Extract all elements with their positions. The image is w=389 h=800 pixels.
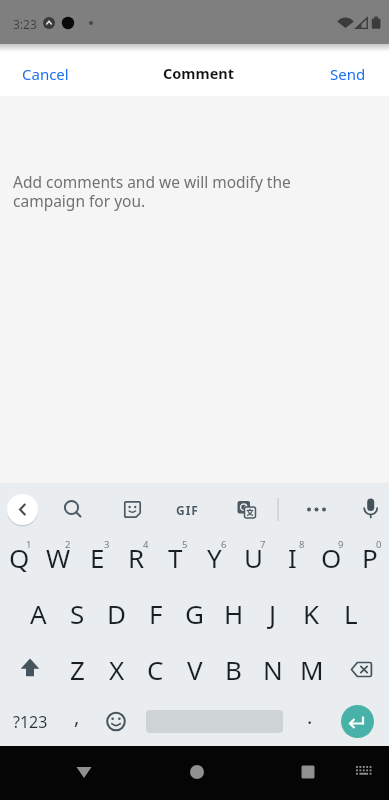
staticText: Q xyxy=(9,540,30,575)
button[interactable]: P xyxy=(351,533,389,586)
staticText: J xyxy=(269,596,277,631)
button[interactable] xyxy=(7,494,38,525)
staticText: GIF xyxy=(176,502,199,518)
button[interactable]: J xyxy=(253,586,292,641)
staticText: P xyxy=(362,540,378,575)
button[interactable] xyxy=(117,494,148,525)
staticText: 5 xyxy=(182,538,188,551)
staticText: E xyxy=(90,540,105,575)
staticText: W xyxy=(46,540,71,575)
staticText: K xyxy=(303,596,320,631)
button[interactable]: L xyxy=(331,586,370,641)
button[interactable]: Y xyxy=(195,533,234,586)
button[interactable] xyxy=(301,494,332,525)
staticText: S xyxy=(70,596,85,631)
button[interactable]: ?123 xyxy=(4,697,56,746)
button[interactable]: C xyxy=(136,641,175,697)
button[interactable] xyxy=(284,752,332,794)
button[interactable]: B xyxy=(214,641,253,697)
button[interactable]: U xyxy=(234,533,273,586)
staticText: M xyxy=(300,652,324,687)
button[interactable]: Send xyxy=(318,56,389,92)
button[interactable]: H xyxy=(214,586,253,641)
staticText: V xyxy=(187,652,203,687)
staticText: I xyxy=(288,540,297,575)
button[interactable]: S xyxy=(58,586,97,641)
staticText: ?123 xyxy=(13,711,48,733)
button[interactable]: M xyxy=(292,641,331,697)
staticText: 4 xyxy=(143,538,149,551)
staticText: 8 xyxy=(299,538,305,551)
staticText: O xyxy=(321,540,342,575)
staticText: Y xyxy=(207,540,222,575)
staticText: T xyxy=(168,540,183,575)
staticText: 3 xyxy=(104,538,110,551)
button[interactable]: Q xyxy=(0,533,39,586)
button[interactable] xyxy=(100,705,132,737)
button[interactable]: O xyxy=(312,533,351,586)
staticText: B xyxy=(225,652,242,687)
button[interactable]: , xyxy=(62,697,92,746)
staticText: 1 xyxy=(26,538,32,551)
button[interactable] xyxy=(331,641,389,697)
button[interactable]: N xyxy=(253,641,292,697)
button[interactable]: Add comments and we will modify the camp… xyxy=(0,96,389,483)
staticText: 2 xyxy=(65,538,71,551)
staticText: L xyxy=(344,596,358,631)
staticText: F xyxy=(149,596,163,631)
button[interactable]: D xyxy=(97,586,136,641)
button[interactable]: V xyxy=(175,641,214,697)
button[interactable] xyxy=(339,703,376,740)
button[interactable] xyxy=(355,492,386,523)
staticText: 0 xyxy=(376,538,382,551)
staticText: Add comments and we will modify the camp… xyxy=(13,171,291,212)
button[interactable]: G xyxy=(175,586,214,641)
staticText: Send xyxy=(330,64,366,84)
staticText: C xyxy=(147,652,164,687)
button[interactable]: . xyxy=(295,697,325,746)
staticText: X xyxy=(109,652,125,687)
staticText: U xyxy=(244,540,264,575)
staticText: G xyxy=(185,596,204,631)
staticText: N xyxy=(263,652,283,687)
button[interactable]: X xyxy=(97,641,136,697)
staticText: 6 xyxy=(221,538,227,551)
button[interactable]: Cancel xyxy=(0,56,81,92)
staticText: Cancel xyxy=(22,64,69,84)
button[interactable] xyxy=(173,752,221,794)
button[interactable] xyxy=(0,641,58,697)
button[interactable]: Z xyxy=(58,641,97,697)
button[interactable]: F xyxy=(136,586,175,641)
button[interactable]: GIF xyxy=(169,494,205,525)
staticText: , xyxy=(74,703,80,730)
button[interactable] xyxy=(231,494,262,525)
staticText: 7 xyxy=(260,538,266,551)
staticText: R xyxy=(128,540,145,575)
button[interactable]: R xyxy=(117,533,156,586)
staticText: H xyxy=(224,596,244,631)
staticText: A xyxy=(30,596,47,631)
staticText: . xyxy=(307,703,313,730)
button[interactable]: I xyxy=(273,533,312,586)
button[interactable]: W xyxy=(39,533,78,586)
staticText: Z xyxy=(70,652,85,687)
button[interactable] xyxy=(60,752,108,794)
button[interactable]: K xyxy=(292,586,331,641)
button[interactable]: T xyxy=(156,533,195,586)
staticText: D xyxy=(107,596,126,631)
staticText: 9 xyxy=(338,538,344,551)
staticText: 3:23 xyxy=(13,16,37,32)
button[interactable] xyxy=(57,494,88,525)
button[interactable]: E xyxy=(78,533,117,586)
button[interactable]: A xyxy=(19,586,58,641)
staticText: Comment xyxy=(163,63,235,83)
button[interactable] xyxy=(348,752,382,794)
